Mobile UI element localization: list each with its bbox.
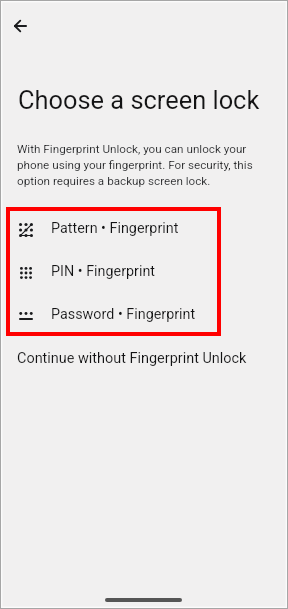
staticText: Password • Fingerprint [51,306,196,323]
button[interactable]: Password • Fingerprint [6,293,221,336]
button[interactable]: Pattern • Fingerprint [6,207,221,250]
button[interactable]: Back [2,7,39,44]
staticText: Pattern • Fingerprint [51,220,179,237]
staticText: With Fingerprint Unlock, you can unlock … [17,142,259,188]
button[interactable]: Continue without Fingerprint Unlock [17,350,247,367]
staticText: Choose a screen lock [18,85,260,115]
staticText: Continue without Fingerprint Unlock [17,350,247,367]
button[interactable]: PIN • Fingerprint [6,250,221,293]
staticText: PIN • Fingerprint [51,263,156,280]
